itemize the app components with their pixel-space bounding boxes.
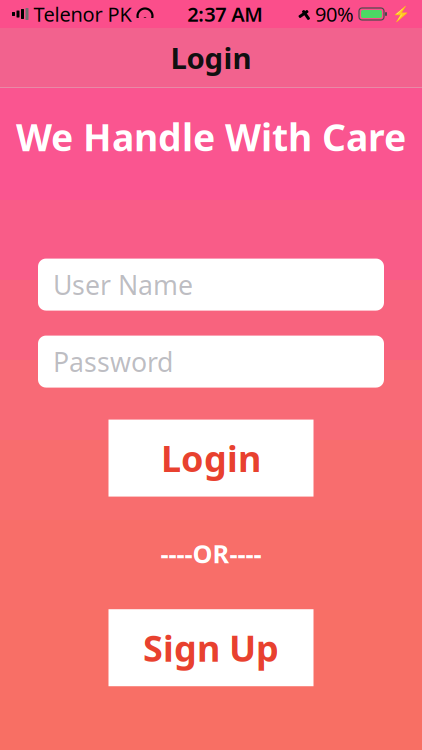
- staticText: We Handle With Care: [16, 112, 406, 162]
- button[interactable]: Sign Up: [108, 609, 313, 686]
- staticText: Login: [161, 434, 261, 482]
- button[interactable]: Login: [108, 420, 313, 497]
- staticText: ----OR----: [160, 537, 261, 570]
- button[interactable]: User Name: [38, 259, 384, 311]
- staticText: Login: [170, 38, 251, 77]
- staticText: Sign Up: [143, 624, 279, 672]
- staticText: ⚡: [392, 6, 410, 22]
- staticText: Password: [53, 344, 173, 379]
- staticText: User Name: [53, 267, 193, 302]
- staticText: 90%: [315, 1, 354, 27]
- button[interactable]: Password: [38, 336, 384, 388]
- staticText: 2:37 AM: [187, 1, 263, 27]
- staticText: Telenor PK: [33, 1, 131, 27]
